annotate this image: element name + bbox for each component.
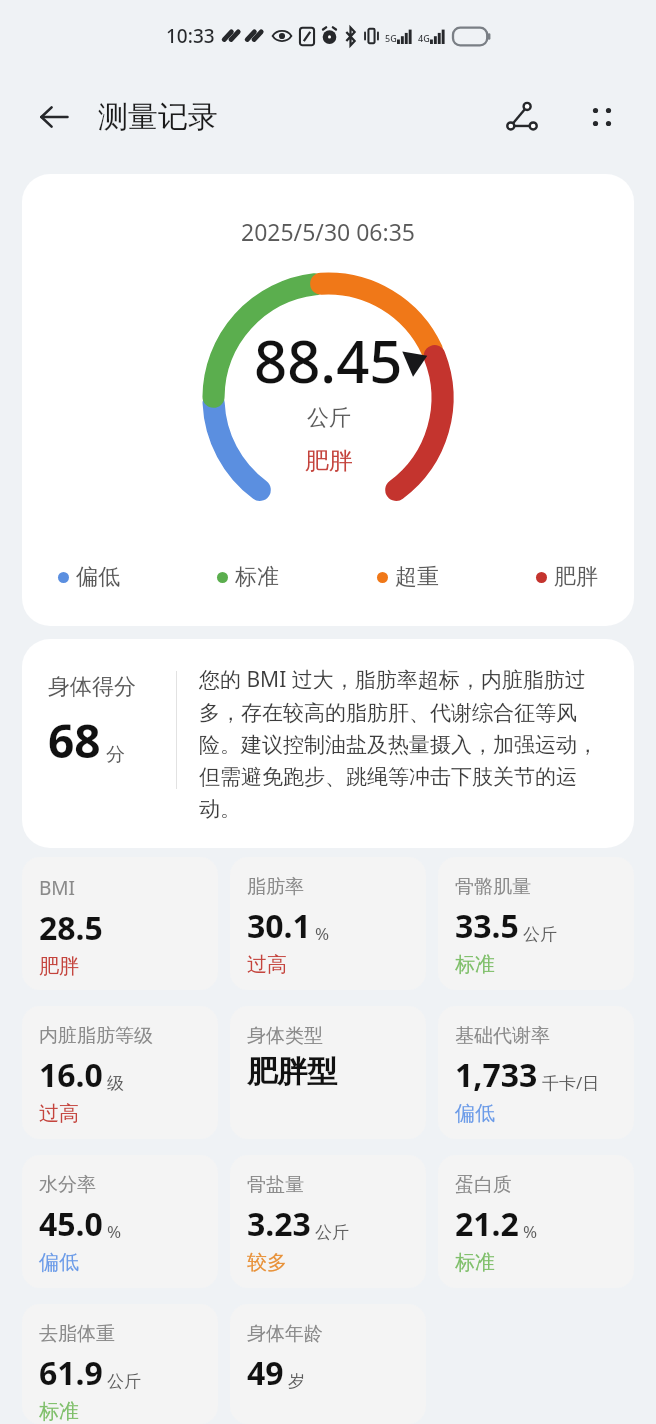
button[interactable]: 身体类型 <box>230 1006 426 1139</box>
staticText: % <box>523 1220 538 1243</box>
staticText: 标准 <box>455 1250 495 1275</box>
button[interactable]: Back <box>32 95 76 139</box>
staticText: 公斤 <box>307 404 351 432</box>
staticText: 水分率 <box>39 1173 96 1197</box>
staticText: 身体得分 <box>48 673 136 701</box>
staticText: 88.45 <box>254 321 403 400</box>
staticText: 公斤 <box>107 1371 141 1392</box>
staticText: 45.0 <box>39 1202 103 1246</box>
staticText: 身体类型 <box>247 1024 323 1048</box>
staticText: 30.1 <box>247 904 311 948</box>
staticText: 脂肪率 <box>247 875 304 899</box>
staticText: 内脏脂肪等级 <box>39 1024 153 1048</box>
staticText: 肥胖 <box>39 954 79 979</box>
staticText: 过高 <box>39 1101 79 1126</box>
staticText: 超重 <box>395 563 439 591</box>
staticText: 分 <box>106 743 125 767</box>
staticText: 千卡/日 <box>542 1071 600 1094</box>
button[interactable]: 去脂体重 <box>22 1304 218 1424</box>
staticText: 5G <box>385 32 397 44</box>
staticText: 21.2 <box>455 1202 519 1246</box>
staticText: % <box>315 922 330 945</box>
button[interactable]: 骨盐量 <box>230 1155 426 1288</box>
staticText: 基础代谢率 <box>455 1024 550 1048</box>
staticText: 较多 <box>247 1250 287 1275</box>
staticText: 去脂体重 <box>39 1322 115 1346</box>
button[interactable]: 2025/5/30 06:35 <box>22 174 634 626</box>
staticText: 标准 <box>39 1399 79 1424</box>
button[interactable]: 蛋白质 <box>438 1155 634 1288</box>
staticText: 岁 <box>288 1371 305 1392</box>
staticText: 偏低 <box>455 1101 495 1126</box>
staticText: 33.5 <box>455 904 519 948</box>
staticText: 68 <box>48 709 101 772</box>
button[interactable]: 内脏脂肪等级 <box>22 1006 218 1139</box>
button[interactable]: 骨骼肌量 <box>438 857 634 990</box>
staticText: 肥胖 <box>554 563 598 591</box>
staticText: 骨骼肌量 <box>455 875 531 899</box>
button[interactable]: 基础代谢率 <box>438 1006 634 1139</box>
staticText: 16.0 <box>39 1053 103 1097</box>
staticText: 10:33 <box>166 23 215 49</box>
button[interactable]: 身体得分 <box>22 639 634 848</box>
staticText: 肥胖型 <box>247 1053 337 1091</box>
staticText: 公斤 <box>315 1222 349 1243</box>
staticText: 身体年龄 <box>247 1322 323 1346</box>
staticText: 61.9 <box>39 1351 103 1395</box>
staticText: 蛋白质 <box>455 1173 512 1197</box>
staticText: 28.5 <box>39 906 103 950</box>
staticText: 1,733 <box>455 1053 538 1097</box>
staticText: 级 <box>107 1073 124 1094</box>
staticText: 骨盐量 <box>247 1173 304 1197</box>
button[interactable]: Share <box>498 93 546 141</box>
staticText: 公斤 <box>523 924 557 945</box>
staticText: 偏低 <box>39 1250 79 1275</box>
button[interactable]: 水分率 <box>22 1155 218 1288</box>
staticText: 您的 BMI 过大，脂肪率超标，内脏脂肪过多，存在较高的脂肪肝、代谢综合征等风险… <box>199 665 610 822</box>
staticText: BMI <box>39 875 76 901</box>
button[interactable]: 身体年龄 <box>230 1304 426 1424</box>
staticText: 49 <box>247 1351 284 1395</box>
button[interactable]: 脂肪率 <box>230 857 426 990</box>
button[interactable]: BMI <box>22 857 218 990</box>
staticText: 测量记录 <box>98 98 218 136</box>
staticText: % <box>107 1220 122 1243</box>
staticText: 偏低 <box>76 563 120 591</box>
staticText: 肥胖 <box>305 446 353 476</box>
button[interactable]: More options <box>578 93 626 141</box>
staticText: 标准 <box>235 563 279 591</box>
staticText: 过高 <box>247 952 287 977</box>
staticText: 标准 <box>455 952 495 977</box>
staticText: 2025/5/30 06:35 <box>241 216 415 247</box>
staticText: 3.23 <box>247 1202 311 1246</box>
staticText: 4G <box>418 32 430 44</box>
